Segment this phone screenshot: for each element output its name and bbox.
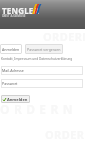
staticText: ORDERN	[0, 101, 77, 117]
staticText: Anmelden	[2, 47, 20, 52]
button[interactable]: Anmelden	[0, 44, 22, 54]
staticText: Mail-Adresse	[2, 68, 24, 73]
staticText: Anmelden	[7, 97, 28, 102]
button[interactable]: Mail-Adresse	[1, 66, 83, 75]
staticText: Passwort	[2, 81, 18, 86]
button[interactable]: Kontakt, Impressum und Datenschutzerklär…	[1, 57, 73, 61]
staticText: Passwort vergessen	[27, 47, 61, 52]
button[interactable]: Anmelden	[1, 95, 30, 103]
staticText: TENGLER	[2, 5, 39, 16]
button[interactable]: Passwort	[1, 79, 83, 88]
button[interactable]: Passwort vergessen	[25, 44, 63, 54]
staticText: ORDERN	[45, 127, 85, 142]
staticText: OBST & GEMÜSE	[2, 14, 26, 18]
staticText: ORDERN	[43, 29, 85, 44]
